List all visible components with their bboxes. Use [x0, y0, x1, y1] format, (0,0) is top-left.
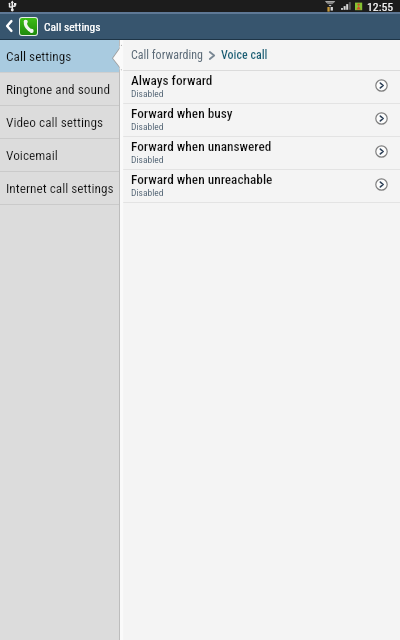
staticText: Forward when unreachable	[131, 172, 273, 188]
staticText: Disabled	[131, 121, 164, 132]
button[interactable]: Navigate up	[0, 14, 17, 39]
staticText: Voice call	[221, 48, 268, 62]
staticText: Forward when unanswered	[131, 139, 272, 155]
staticText: Always forward	[131, 73, 213, 89]
staticText: Video call settings	[6, 115, 104, 131]
button[interactable]: Internet call settings	[0, 172, 120, 205]
button[interactable]: Video call settings	[0, 106, 120, 139]
button[interactable]: Ringtone and sound	[0, 73, 120, 106]
staticText: Disabled	[131, 187, 164, 198]
staticText: Disabled	[131, 88, 164, 99]
staticText: Ringtone and sound	[6, 82, 110, 98]
staticText: Call settings	[44, 20, 101, 33]
staticText: 12:55	[367, 0, 394, 12]
button[interactable]: Voicemail	[0, 139, 120, 172]
staticText: Call settings	[6, 49, 72, 65]
button[interactable]: Open Forward when unanswered	[368, 138, 394, 164]
button[interactable]: Open Forward when unreachable	[368, 171, 394, 197]
button[interactable]: Forward when unreachable	[120, 170, 400, 203]
button[interactable]: Open Forward when busy	[368, 105, 394, 131]
staticText: Disabled	[131, 154, 164, 165]
button[interactable]: Call settings	[0, 40, 120, 73]
staticText: Voicemail	[6, 148, 58, 164]
button[interactable]: Open Always forward	[368, 72, 394, 98]
button[interactable]: Forward when busy	[120, 104, 400, 137]
staticText: Call forwarding	[131, 48, 203, 62]
button[interactable]: Forward when unanswered	[120, 137, 400, 170]
button[interactable]: Always forward	[120, 71, 400, 104]
staticText: Internet call settings	[6, 181, 114, 197]
staticText: Forward when busy	[131, 106, 233, 122]
